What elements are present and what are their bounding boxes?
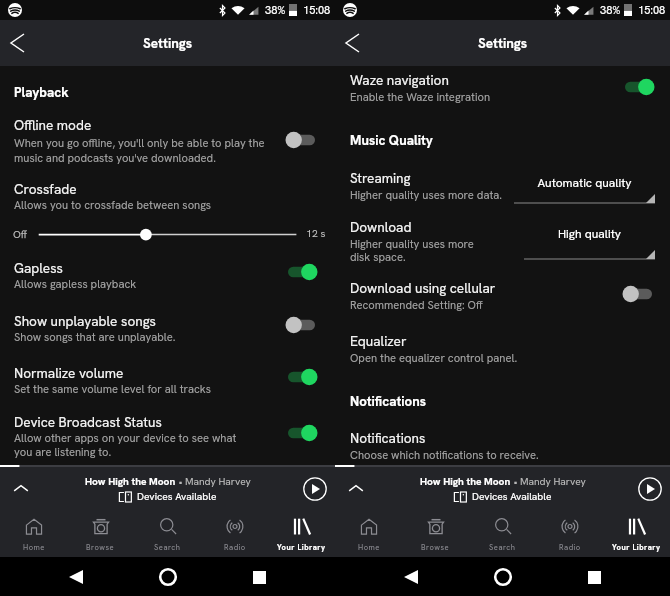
- staticText: • Mandy Harvey: [511, 475, 586, 488]
- staticText: Search: [154, 542, 181, 552]
- staticText: Open the equalizer control panel.: [350, 351, 518, 366]
- button[interactable]: Toggle: [287, 368, 316, 386]
- staticText: Allow other apps on your device to see w…: [14, 431, 237, 446]
- button[interactable]: Toggle: [287, 131, 316, 149]
- staticText: Normalize volume: [14, 364, 124, 382]
- staticText: Show unplayable songs: [14, 312, 156, 330]
- staticText: Download using cellular: [350, 279, 496, 297]
- button[interactable]: Play: [638, 477, 662, 501]
- staticText: disk space.: [350, 250, 406, 265]
- staticText: 38%: [265, 3, 286, 17]
- staticText: Radio: [559, 542, 581, 552]
- button[interactable]: Recent apps: [579, 562, 609, 592]
- staticText: Choose which notifications to receive.: [350, 448, 539, 463]
- staticText: How High the Moon: [420, 475, 511, 488]
- button[interactable]: Back: [0, 26, 34, 60]
- staticText: 38%: [600, 3, 621, 17]
- staticText: When you go offline, you'll only be able…: [14, 136, 265, 151]
- button[interactable]: Home: [153, 562, 183, 592]
- staticText: Home: [358, 542, 380, 552]
- button[interactable]: Browse: [67, 510, 134, 557]
- staticText: you are listening to.: [14, 445, 112, 460]
- staticText: Offline mode: [14, 116, 92, 134]
- staticText: 15:08: [638, 3, 666, 17]
- staticText: Higher quality uses more: [350, 237, 474, 252]
- staticText: Notifications: [350, 429, 426, 447]
- button[interactable]: Toggle: [287, 263, 316, 281]
- button[interactable]: Home: [0, 510, 67, 557]
- staticText: Set the same volume level for all tracks: [14, 382, 211, 397]
- staticText: Streaming: [350, 169, 411, 187]
- staticText: Higher quality uses more data.: [350, 188, 503, 203]
- staticText: High quality: [524, 226, 655, 242]
- button[interactable]: Search: [469, 510, 536, 557]
- button[interactable]: Automatic quality: [514, 175, 655, 191]
- staticText: Home: [23, 542, 45, 552]
- staticText: Your Library: [612, 542, 661, 552]
- staticText: Your Library: [277, 542, 326, 552]
- button[interactable]: Expand player: [335, 468, 377, 510]
- button[interactable]: Toggle: [287, 316, 316, 334]
- staticText: Allows gapless playback: [14, 277, 137, 292]
- staticText: music and podcasts you've downloaded.: [14, 151, 216, 166]
- button[interactable]: Your Library: [603, 510, 670, 557]
- button[interactable]: Browse: [402, 510, 469, 557]
- button[interactable]: Home: [488, 562, 518, 592]
- staticText: Settings: [143, 34, 193, 52]
- staticText: Search: [489, 542, 516, 552]
- staticText: Off: [13, 227, 28, 239]
- staticText: Devices Available: [137, 490, 217, 503]
- staticText: Settings: [478, 34, 528, 52]
- staticText: Playback: [14, 84, 69, 101]
- button[interactable]: Search: [134, 510, 201, 557]
- staticText: Crossfade: [14, 180, 77, 198]
- staticText: Recommended Setting: Off: [350, 298, 483, 313]
- button[interactable]: Play: [303, 477, 327, 501]
- button[interactable]: Expand player: [0, 468, 42, 510]
- staticText: Equalizer: [350, 332, 407, 350]
- button[interactable]: Toggle: [624, 78, 653, 96]
- button[interactable]: Recent apps: [244, 562, 274, 592]
- staticText: • Mandy Harvey: [176, 475, 251, 488]
- staticText: Gapless: [14, 259, 63, 277]
- button[interactable]: Toggle: [624, 285, 653, 303]
- staticText: Show songs that are unplayable.: [14, 330, 176, 345]
- staticText: Devices Available: [472, 490, 552, 503]
- button[interactable]: Toggle: [287, 424, 316, 442]
- staticText: How High the Moon: [85, 475, 176, 488]
- staticText: Device Broadcast Status: [14, 413, 162, 431]
- button[interactable]: Radio: [536, 510, 603, 557]
- staticText: 15:08: [303, 3, 331, 17]
- staticText: Download: [350, 218, 412, 236]
- button[interactable]: Radio: [201, 510, 268, 557]
- staticText: Radio: [224, 542, 246, 552]
- staticText: Automatic quality: [514, 175, 655, 191]
- button[interactable]: Back: [61, 562, 91, 592]
- staticText: Notifications: [350, 393, 426, 410]
- button[interactable]: Home: [335, 510, 402, 557]
- button[interactable]: Your Library: [268, 510, 335, 557]
- button[interactable]: Back: [396, 562, 426, 592]
- staticText: Browse: [86, 542, 115, 552]
- staticText: Waze navigation: [350, 71, 449, 89]
- button[interactable]: Back: [335, 26, 369, 60]
- staticText: Browse: [421, 542, 450, 552]
- staticText: Allows you to crossfade between songs: [14, 198, 212, 213]
- button[interactable]: High quality: [524, 226, 655, 242]
- staticText: Music Quality: [350, 132, 433, 149]
- staticText: 12 s: [306, 226, 326, 238]
- staticText: Enable the Waze integration: [350, 90, 491, 105]
